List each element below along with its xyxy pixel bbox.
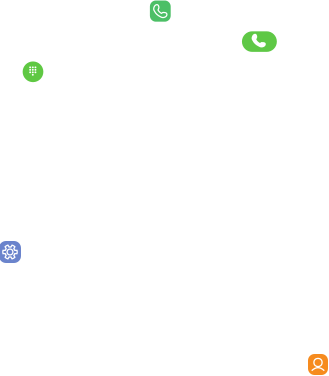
button[interactable]: Call	[150, 0, 171, 22]
button[interactable]: Settings	[0, 241, 21, 263]
button[interactable]: Call	[242, 31, 277, 52]
button[interactable]: Account	[308, 354, 328, 375]
button[interactable]: Keypad	[23, 61, 43, 82]
